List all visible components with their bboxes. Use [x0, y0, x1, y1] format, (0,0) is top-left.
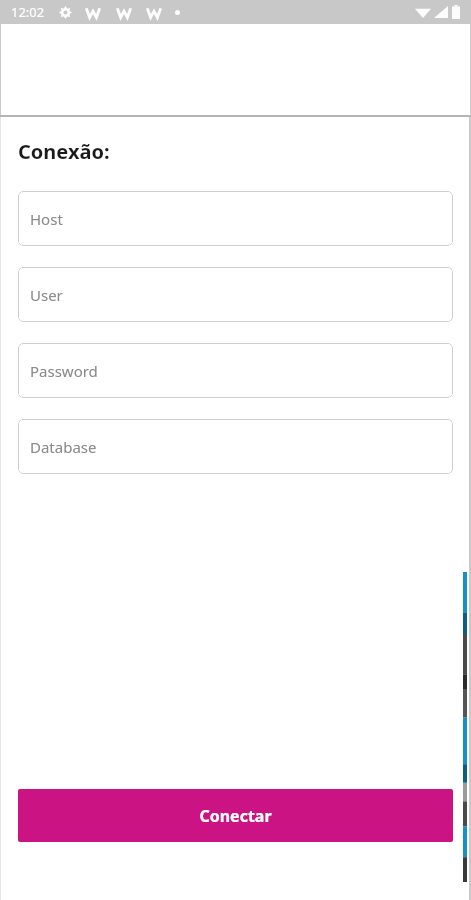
staticText: User: [30, 285, 63, 305]
staticText: Host: [30, 209, 63, 229]
button[interactable]: Database: [18, 419, 453, 474]
staticText: 12:02: [11, 3, 45, 21]
staticText: Conectar: [199, 805, 272, 827]
staticText: Database: [30, 437, 97, 457]
staticText: Conexão:: [18, 138, 110, 165]
button[interactable]: Host: [18, 191, 453, 246]
button[interactable]: User: [18, 267, 453, 322]
button[interactable]: Conectar: [18, 789, 453, 842]
staticText: Password: [30, 361, 98, 381]
button[interactable]: Password: [18, 343, 453, 398]
